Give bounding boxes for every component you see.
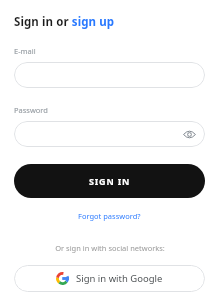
staticText: SIGN IN <box>89 175 131 187</box>
staticText: Sign in with Google <box>76 272 163 285</box>
button[interactable]: Show password <box>14 121 205 147</box>
button[interactable] <box>14 62 205 88</box>
staticText: Forgot password? <box>78 211 141 221</box>
staticText: Password <box>14 105 48 115</box>
button[interactable]: Show password <box>182 127 196 141</box>
button[interactable]: Forgot password? <box>74 209 145 223</box>
button[interactable]: Sign in with Google <box>14 265 205 292</box>
button[interactable]: SIGN IN <box>14 164 205 198</box>
staticText: E-mail <box>14 46 36 56</box>
staticText: Or sign in with social networks: <box>55 243 165 253</box>
staticText: Sign in or sign up <box>14 14 115 30</box>
